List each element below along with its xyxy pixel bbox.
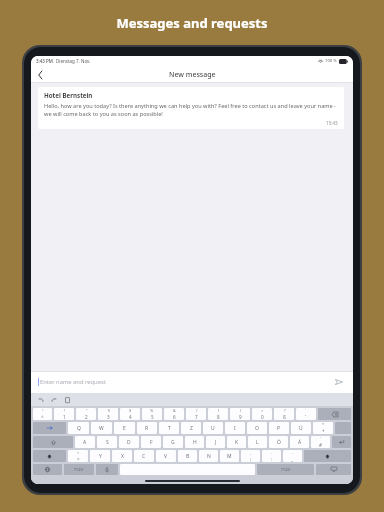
button[interactable]: Undo [37, 396, 45, 404]
staticText: 9 [239, 414, 242, 420]
button[interactable]: ? [274, 408, 294, 420]
button[interactable]: T [159, 422, 179, 434]
staticText: , [250, 450, 252, 455]
button[interactable]: G [163, 436, 183, 448]
button[interactable]: Hide keyboard [316, 464, 351, 475]
button[interactable]: Backspace [318, 408, 351, 420]
button[interactable]: ) [230, 408, 250, 420]
button[interactable]: R [137, 422, 157, 434]
staticText: B [186, 453, 190, 460]
staticText: Hotel Bernstein [44, 91, 93, 99]
button[interactable]: ' [311, 436, 330, 448]
button[interactable]: E [114, 422, 135, 434]
button[interactable]: C [134, 450, 154, 462]
staticText: % [150, 408, 154, 413]
button[interactable]: < [68, 450, 88, 462]
button[interactable]: & [164, 408, 184, 420]
staticText: P [277, 425, 281, 432]
button[interactable]: Ö [269, 436, 288, 448]
button[interactable]: S [97, 436, 117, 448]
staticText: Hello, how are you today? Is there anyth… [44, 102, 338, 118]
button[interactable]: ( [208, 408, 228, 420]
button[interactable]: § [98, 408, 118, 420]
staticText: & [173, 408, 176, 413]
button[interactable]: Y [90, 450, 110, 462]
staticText: $ [129, 408, 132, 413]
button[interactable]: K [227, 436, 246, 448]
button[interactable]: Redo [50, 396, 58, 404]
button[interactable]: Hotel Bernstein [38, 87, 344, 129]
button[interactable]: V [156, 450, 176, 462]
button[interactable]: ?123 [64, 464, 94, 475]
staticText: : [271, 456, 273, 462]
button[interactable]: B [178, 450, 197, 462]
staticText: _ [291, 456, 294, 462]
staticText: W [99, 425, 104, 432]
staticText: + [322, 428, 325, 434]
button[interactable]: Send [332, 375, 346, 389]
button[interactable]: ! [54, 408, 74, 420]
staticText: ( [218, 408, 220, 413]
button[interactable]: U [203, 422, 223, 434]
staticText: ? [284, 408, 286, 413]
button[interactable]: Enter name and request [38, 378, 332, 386]
button[interactable]: ?123 [257, 464, 314, 475]
button[interactable]: ° [33, 408, 52, 420]
staticText: New message [169, 70, 216, 80]
button[interactable]: Voice input [96, 464, 118, 475]
button[interactable]: Caps lock [33, 436, 73, 448]
button[interactable]: O [247, 422, 267, 434]
button[interactable]: X [112, 450, 132, 462]
button[interactable]: Q [68, 422, 89, 434]
button[interactable]: Return [332, 436, 351, 448]
staticText: E [123, 425, 126, 432]
button[interactable]: Z [181, 422, 201, 434]
staticText: Z [190, 425, 193, 432]
staticText: D [127, 439, 131, 446]
button[interactable]: / [186, 408, 206, 420]
staticText: U [211, 425, 215, 432]
button[interactable]: L [248, 436, 267, 448]
staticText: F [150, 439, 153, 446]
button[interactable]: ` [296, 408, 316, 420]
button[interactable]: Ä [290, 436, 309, 448]
staticText: * [322, 422, 325, 427]
button[interactable]: , [241, 450, 260, 462]
button[interactable]: Paste [63, 396, 71, 404]
button[interactable]: I [225, 422, 245, 434]
staticText: Messages and requests [116, 14, 268, 32]
button[interactable]: $ [120, 408, 140, 420]
button[interactable]: Shift right [304, 450, 351, 462]
button[interactable]: - [283, 450, 302, 462]
staticText: < [77, 450, 80, 455]
button[interactable]: D [119, 436, 139, 448]
button[interactable]: Tab [33, 422, 66, 434]
staticText: N [207, 453, 211, 460]
button[interactable]: W [91, 422, 112, 434]
staticText: § [108, 408, 110, 413]
button[interactable]: * [313, 422, 333, 434]
button[interactable]: Shift [33, 450, 66, 462]
button[interactable]: Back [33, 68, 47, 82]
staticText: M [227, 453, 232, 460]
button[interactable]: Ü [291, 422, 311, 434]
button[interactable]: Language [33, 464, 62, 475]
button[interactable]: J [206, 436, 225, 448]
button[interactable]: % [142, 408, 162, 420]
button[interactable]: N [199, 450, 218, 462]
button[interactable]: F [141, 436, 161, 448]
button[interactable]: P [269, 422, 289, 434]
button[interactable]: . [262, 450, 281, 462]
button[interactable]: H [185, 436, 204, 448]
staticText: ?123 [281, 467, 291, 473]
staticText: Y [99, 453, 102, 460]
button[interactable]: = [252, 408, 272, 420]
staticText: T [168, 425, 171, 432]
button[interactable]: A [75, 436, 95, 448]
staticText: 8 [217, 414, 220, 420]
staticText: J [215, 439, 217, 446]
button[interactable]: " [76, 408, 96, 420]
button[interactable]: M [220, 450, 239, 462]
